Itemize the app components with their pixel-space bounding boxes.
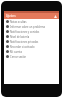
- button[interactable]: Nivel de batería: [4, 34, 59, 39]
- staticText: Ajustes: [6, 14, 16, 18]
- button[interactable]: Mi cuenta: [4, 49, 59, 54]
- staticText: Notas ocultas: [10, 20, 27, 24]
- button[interactable]: Informar sobre un problema: [4, 24, 59, 29]
- staticText: Nivel de batería: [10, 35, 30, 39]
- button[interactable]: Cerrar sesión: [4, 54, 59, 59]
- button[interactable]: Recordar si activado: [4, 44, 59, 49]
- button[interactable]: Notas ocultas: [4, 19, 59, 24]
- staticText: Informar sobre un problema: [10, 25, 45, 29]
- button[interactable]: Account: [53, 14, 58, 19]
- staticText: Cerrar sesión: [10, 55, 27, 59]
- staticText: Recordar si activado: [10, 45, 35, 49]
- staticText: Mi cuenta: [10, 50, 23, 54]
- button[interactable]: Notificaciones privadas: [4, 39, 59, 44]
- button[interactable]: Notificaciones y sonidos: [4, 29, 59, 34]
- staticText: Notificaciones y sonidos: [10, 30, 40, 34]
- staticText: Notificaciones privadas: [10, 40, 39, 44]
